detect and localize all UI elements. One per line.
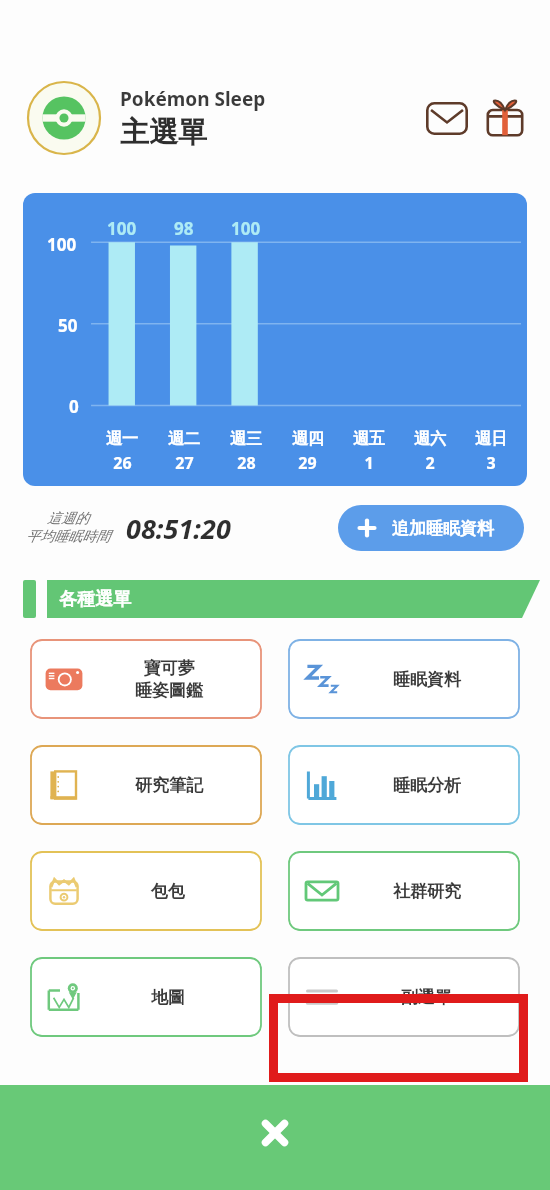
button[interactable]: 追加睡眠資料 — [338, 505, 524, 551]
staticText: 包包 — [151, 881, 185, 902]
staticText: 追加睡眠資料 — [392, 518, 494, 539]
button[interactable]: 包包 — [30, 851, 262, 931]
staticText: 2 — [425, 452, 435, 474]
staticText: 100 — [231, 217, 261, 240]
button[interactable]: Profile — [26, 80, 102, 156]
button[interactable]: 社群研究 — [288, 851, 520, 931]
staticText: 主選單 — [120, 114, 207, 151]
staticText: 平均睡眠時間 — [26, 528, 110, 546]
staticText: 週日 — [475, 429, 507, 449]
staticText: 50 — [58, 314, 78, 337]
staticText: 寶可夢 睡姿圖鑑 — [135, 658, 203, 701]
button[interactable]: 研究筆記 — [30, 745, 262, 825]
staticText: 研究筆記 — [135, 775, 203, 796]
staticText: 08:51:20 — [126, 510, 231, 547]
staticText: 地圖 — [151, 987, 185, 1008]
staticText: 28 — [237, 452, 256, 474]
button[interactable]: 寶可夢 睡姿圖鑑 — [30, 639, 262, 719]
staticText: 睡眠分析 — [393, 775, 461, 796]
staticText: 週四 — [292, 429, 324, 449]
button[interactable]: 地圖 — [30, 957, 262, 1037]
staticText: 98 — [174, 217, 194, 240]
button[interactable]: 睡眠資料 — [288, 639, 520, 719]
staticText: 週五 — [353, 429, 385, 449]
staticText: 3 — [486, 452, 496, 474]
button[interactable]: Mail — [424, 95, 470, 141]
button[interactable]: Gifts — [482, 95, 528, 141]
button[interactable]: 副選單 — [288, 957, 520, 1037]
staticText: 100 — [47, 233, 77, 256]
staticText: 26 — [113, 452, 132, 474]
staticText: 週一 — [106, 429, 138, 449]
staticText: 睡眠資料 — [393, 669, 461, 690]
staticText: 27 — [175, 452, 194, 474]
staticText: 各種選單 — [59, 588, 131, 611]
staticText: 這週的 — [47, 510, 89, 528]
staticText: 100 — [107, 217, 137, 240]
staticText: 0 — [69, 395, 79, 418]
staticText: Pokémon Sleep — [120, 86, 266, 112]
staticText: 週三 — [230, 429, 262, 449]
staticText: 週二 — [168, 429, 200, 449]
staticText: 週六 — [414, 429, 446, 449]
staticText: 1 — [364, 452, 374, 474]
button[interactable]: Close — [249, 1107, 301, 1159]
staticText: 社群研究 — [393, 881, 461, 902]
staticText: 副選單 — [401, 987, 452, 1008]
button[interactable]: 睡眠分析 — [288, 745, 520, 825]
staticText: 29 — [298, 452, 317, 474]
